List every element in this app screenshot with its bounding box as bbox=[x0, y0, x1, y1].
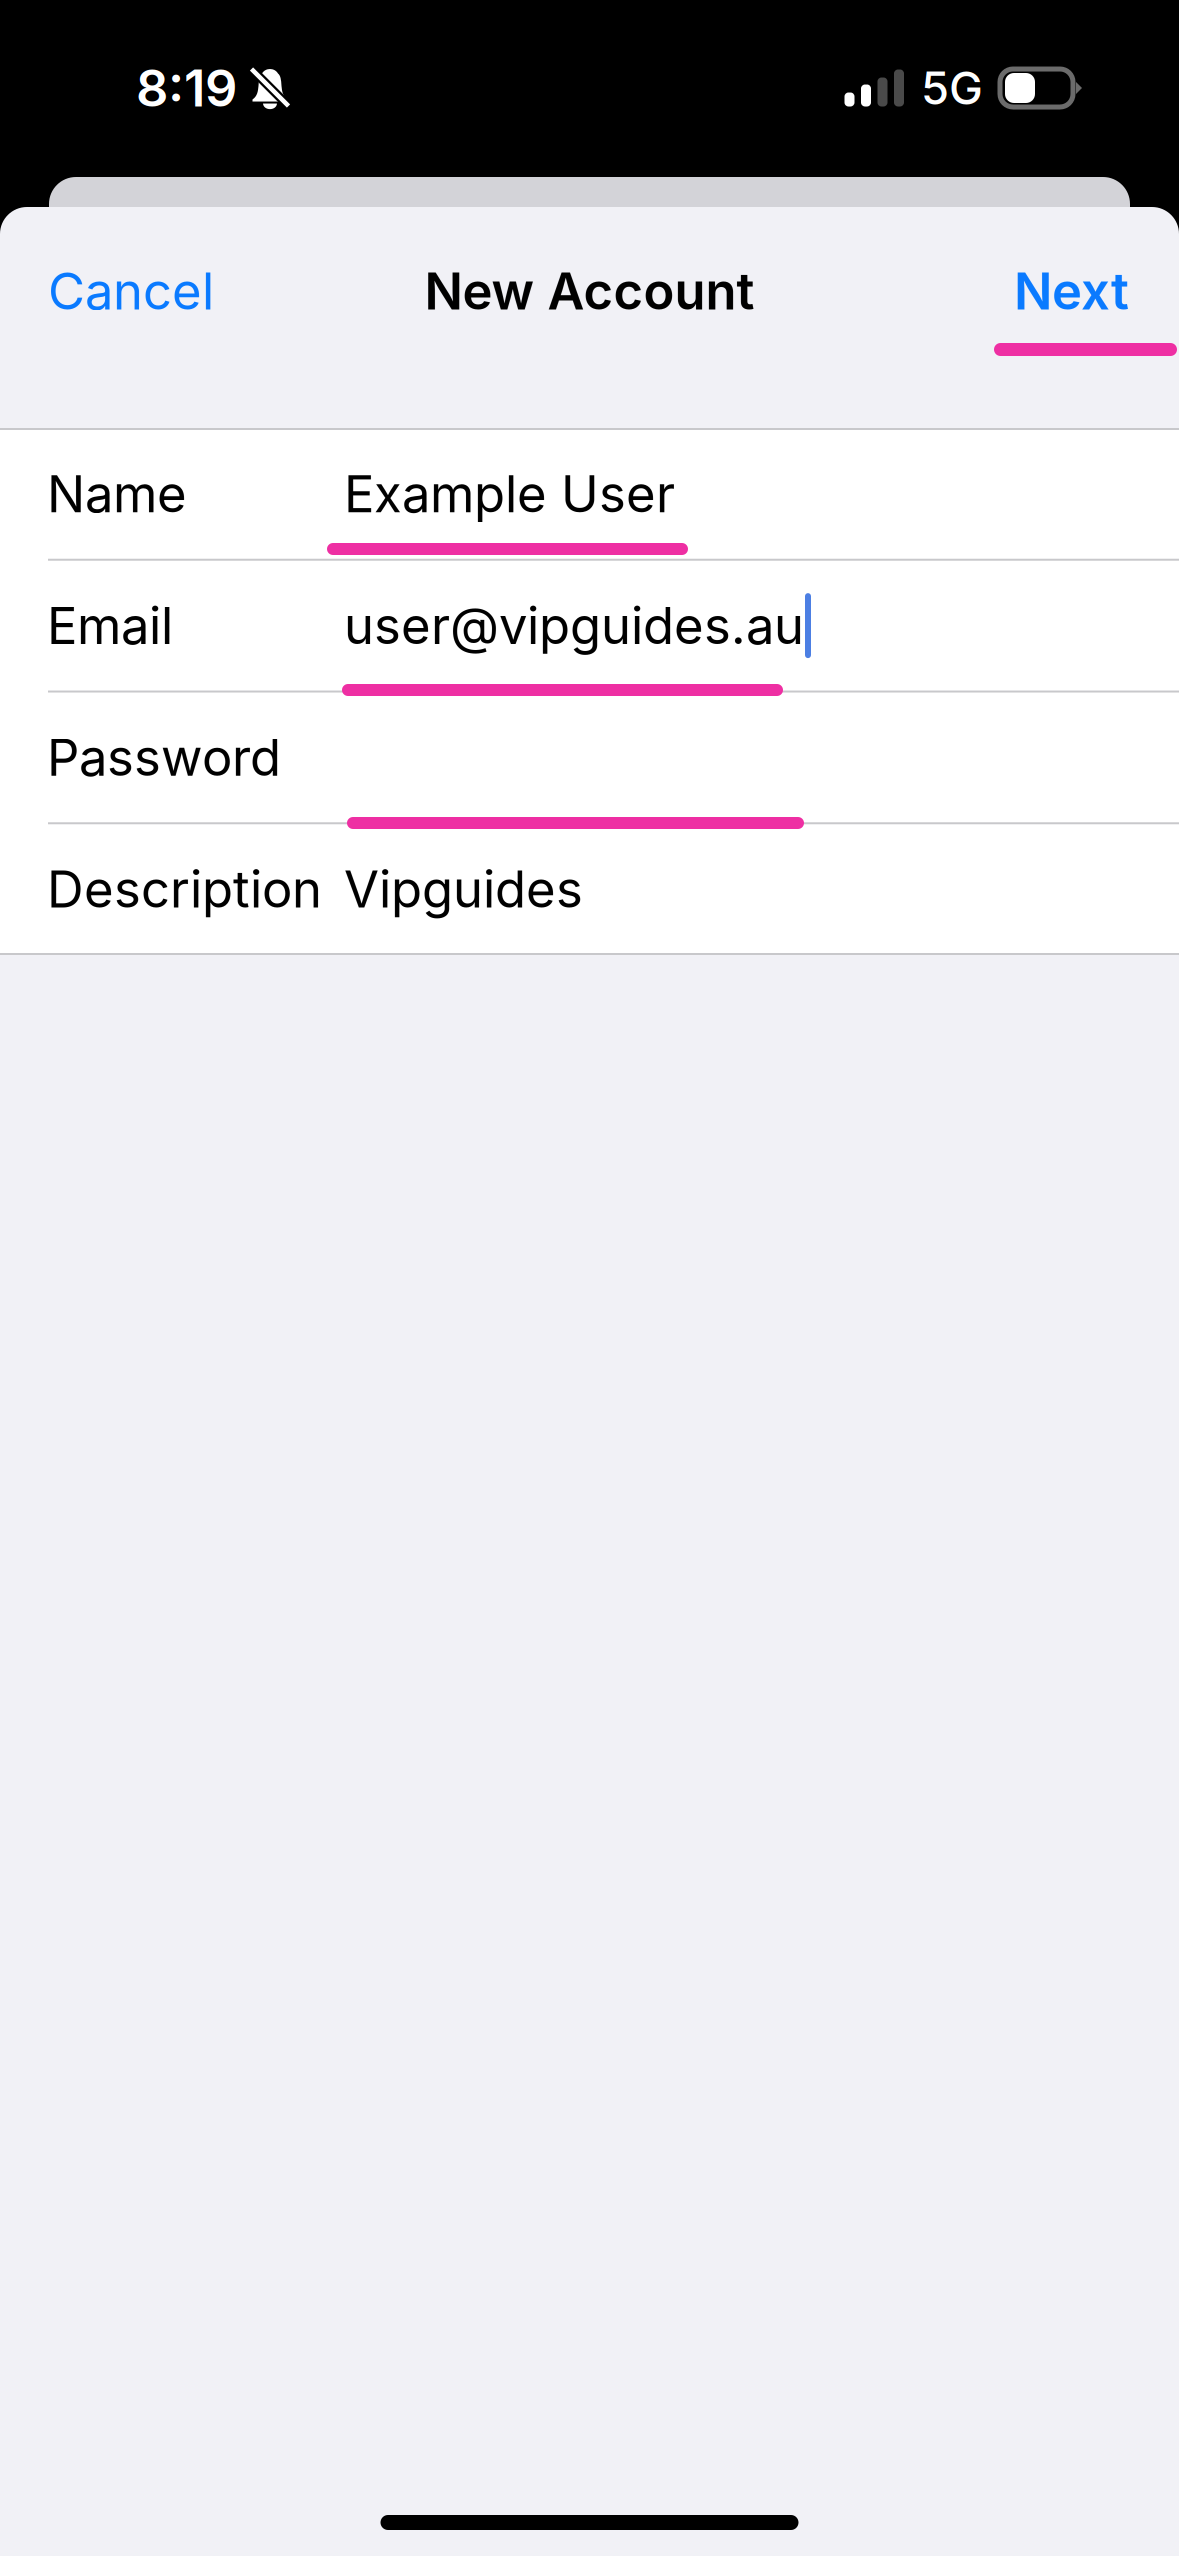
staticText: Next bbox=[1014, 260, 1129, 322]
staticText: Cancel bbox=[48, 260, 214, 322]
button[interactable]: Next bbox=[980, 235, 1179, 347]
button[interactable]: Password bbox=[0, 691, 1179, 823]
staticText: Example User bbox=[344, 463, 675, 524]
staticText: user@vipguides.au bbox=[344, 595, 804, 656]
button[interactable]: Name bbox=[0, 428, 1179, 560]
staticText: Email bbox=[47, 595, 173, 656]
staticText: Password bbox=[47, 727, 281, 788]
staticText: 8:19 bbox=[136, 57, 237, 119]
staticText: Name bbox=[47, 463, 187, 524]
button[interactable]: Description bbox=[0, 823, 1179, 955]
staticText: Description bbox=[47, 858, 322, 920]
button[interactable]: Cancel bbox=[0, 235, 248, 347]
staticText: New Account bbox=[424, 260, 754, 322]
staticText: Vipguides bbox=[344, 858, 583, 920]
staticText: 5G bbox=[921, 61, 983, 115]
button[interactable]: Email bbox=[0, 560, 1179, 692]
